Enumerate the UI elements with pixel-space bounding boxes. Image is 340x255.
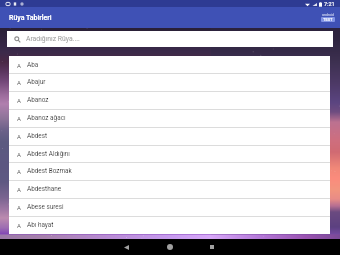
button[interactable]: A [9,145,330,163]
staticText: A [17,115,21,122]
button[interactable]: Ad badge [323,17,333,22]
button[interactable]: A [9,198,330,216]
staticText: Abdest Bozmak [27,167,72,175]
staticText: Abajur [27,78,46,86]
staticText: Rüya Tabirleri [9,14,52,22]
staticText: TEST [323,17,333,22]
staticText: A [17,151,21,158]
staticText: Aradığınız Rüya.... [26,35,80,43]
staticText: android [322,13,334,17]
staticText: A [17,133,21,140]
staticText: Abanoz [27,96,49,104]
button[interactable]: A [9,73,330,91]
staticText: A [17,79,21,86]
staticText: A [17,62,21,69]
button[interactable]: A [9,162,330,180]
staticText: Abı hayat [27,221,54,229]
button[interactable]: A [9,127,330,145]
staticText: A [17,97,21,104]
staticText: Abdest [27,132,48,140]
staticText: Abdest Aldığını [27,150,70,158]
button[interactable]: A [9,216,330,234]
button[interactable]: A [9,180,330,198]
staticText: Abanoz ağacı [27,114,66,122]
button[interactable]: Aradığınız Rüya.... [7,31,333,47]
staticText: A [17,204,21,211]
staticText: A [17,222,21,229]
button[interactable]: A [9,56,330,74]
staticText: A [17,168,21,175]
button[interactable]: Recents [205,240,219,254]
staticText: Abdesthane [27,185,62,193]
staticText: A [17,186,21,193]
staticText: 7:21 [324,1,335,7]
button[interactable]: A [9,109,330,127]
staticText: Aba [27,61,39,69]
staticText: Abese suresi [27,203,64,211]
button[interactable]: A [9,91,330,109]
button[interactable]: Back [119,240,133,254]
button[interactable]: Home [163,240,177,254]
